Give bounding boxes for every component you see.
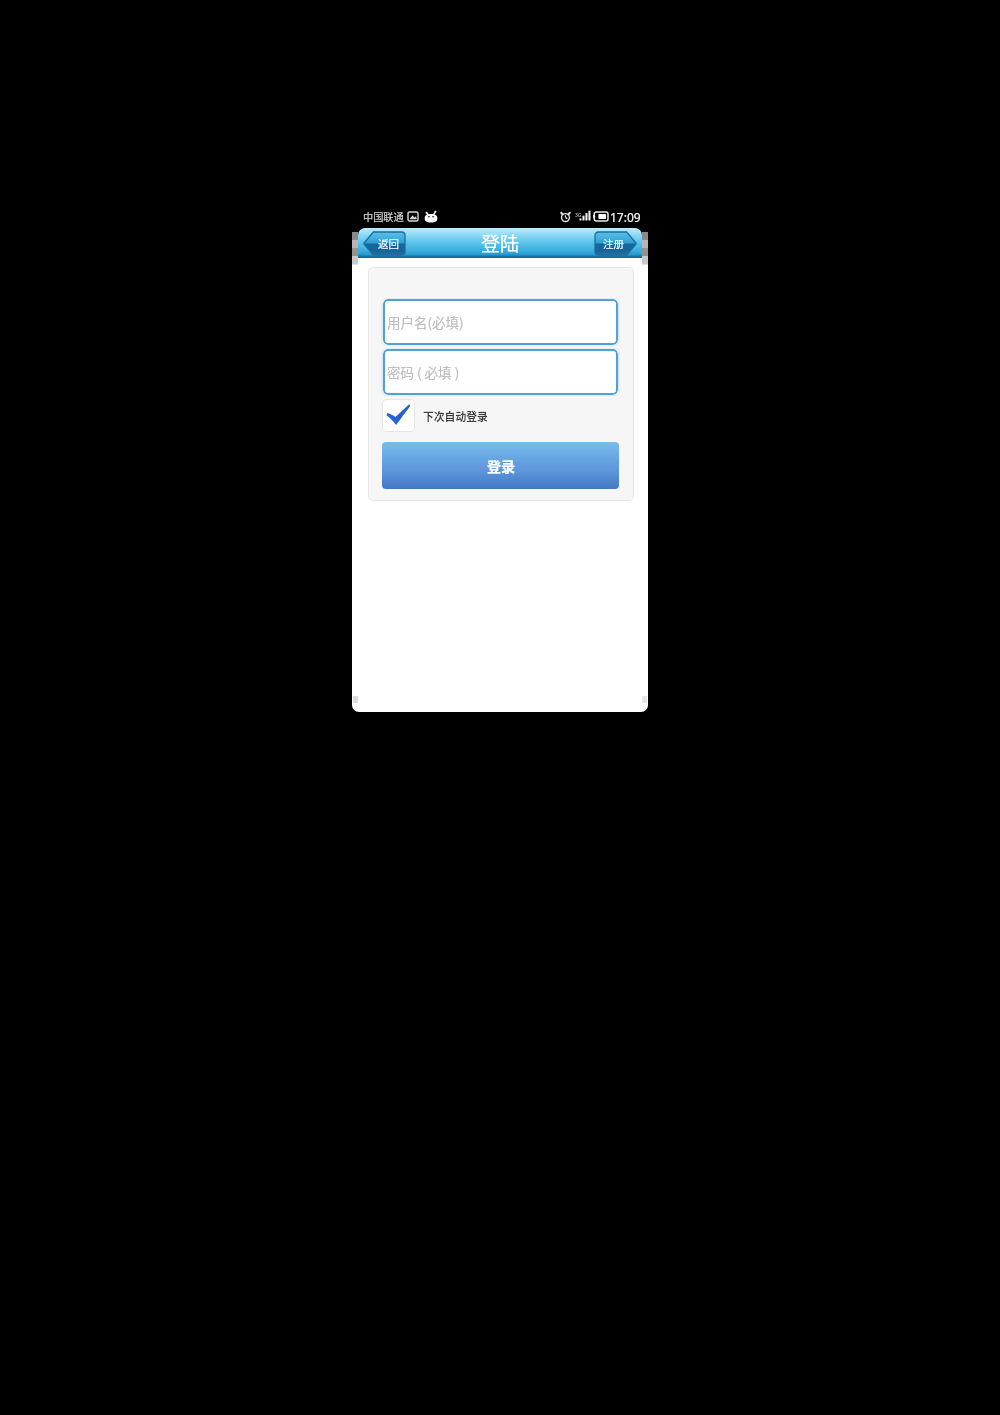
button[interactable]: 返回 <box>363 232 405 255</box>
button[interactable]: 用户名(必填) <box>383 299 618 345</box>
staticText: 3G <box>575 212 582 219</box>
button[interactable]: 注册 <box>595 232 637 255</box>
staticText: 中国联通 <box>363 209 404 224</box>
staticText: 登陆 <box>481 229 520 257</box>
staticText: 注册 <box>603 236 624 251</box>
staticText: 用户名(必填) <box>387 312 464 332</box>
staticText: 返回 <box>378 236 399 251</box>
button[interactable]: 登录 <box>382 442 619 489</box>
button[interactable]: 密码 ( 必填 ) <box>383 349 618 395</box>
staticText: 登录 <box>487 456 515 476</box>
staticText: 下次自动登录 <box>423 408 488 424</box>
button[interactable]: 下次自动登录 <box>382 399 488 432</box>
staticText: 密码 ( 必填 ) <box>387 362 460 382</box>
staticText: 17:09 <box>610 209 641 225</box>
